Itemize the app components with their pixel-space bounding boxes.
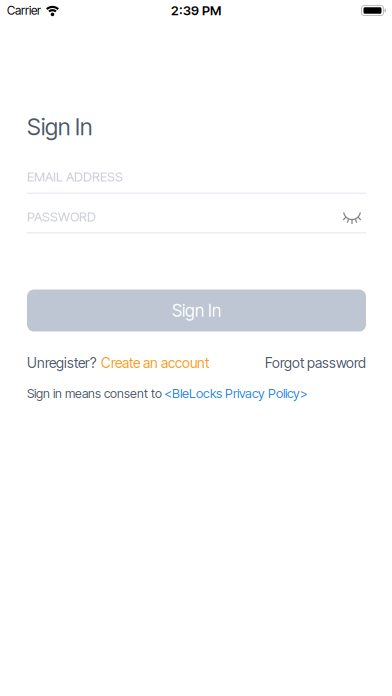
staticText: <BleLocks Privacy Policy>	[164, 385, 308, 401]
button[interactable]: PASSWORD	[27, 209, 366, 234]
staticText: PASSWORD	[27, 209, 96, 225]
staticText: EMAIL ADDRESS	[27, 169, 123, 184]
staticText: Create an account	[101, 355, 209, 371]
staticText: Carrier	[7, 3, 41, 18]
button[interactable]: Create an account	[96, 355, 209, 371]
button[interactable]	[343, 209, 366, 225]
staticText: Sign In	[172, 300, 221, 321]
staticText: 2:39 PM	[171, 3, 221, 18]
button[interactable]: EMAIL ADDRESS	[27, 169, 366, 194]
staticText: Sign In	[27, 113, 92, 141]
button[interactable]: Forgot password	[265, 355, 366, 371]
button[interactable]: <BleLocks Privacy Policy>	[164, 385, 308, 401]
staticText: Sign in means consent to	[27, 386, 162, 401]
staticText: Unregister?	[27, 355, 96, 371]
staticText: Forgot password	[265, 355, 366, 371]
button[interactable]: Sign In	[27, 290, 366, 332]
